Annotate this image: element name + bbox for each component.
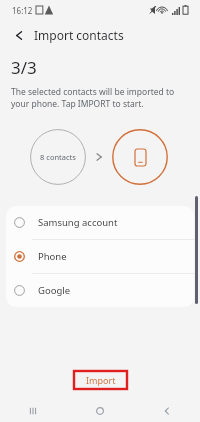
button[interactable]: Home <box>87 400 113 422</box>
staticText: 16:12 <box>12 5 33 16</box>
staticText: Import <box>86 374 116 386</box>
staticText: Samsung account <box>38 216 118 229</box>
button[interactable]: Back <box>154 400 180 422</box>
button[interactable]: Google <box>6 274 194 307</box>
button[interactable]: Recents <box>20 400 46 422</box>
staticText: Google <box>38 284 71 297</box>
button[interactable]: Back <box>0 20 200 50</box>
button[interactable]: Samsung account <box>6 206 194 239</box>
staticText: Phone <box>38 250 67 263</box>
staticText: Import contacts <box>34 27 124 43</box>
staticText: 3/3 <box>11 56 37 79</box>
staticText: The selected contacts will be imported t… <box>11 86 188 110</box>
staticText: 8 contacts <box>40 152 76 162</box>
button[interactable]: Back <box>10 26 28 44</box>
button[interactable]: Import <box>74 371 127 389</box>
button[interactable]: Phone <box>6 240 194 273</box>
